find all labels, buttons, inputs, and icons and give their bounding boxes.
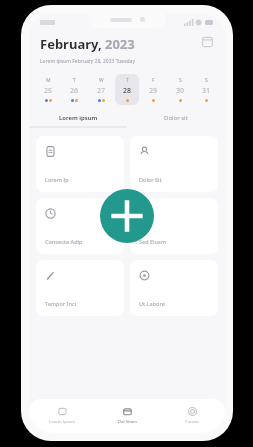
staticText: February, <box>40 35 102 53</box>
staticText: 30 <box>176 86 185 96</box>
button[interactable]: Add <box>100 189 154 243</box>
button[interactable]: M <box>36 74 60 105</box>
button[interactable]: Consecte Adip <box>36 198 124 254</box>
staticText: Dolor sit <box>164 114 188 122</box>
staticText: 2023 <box>105 35 135 53</box>
staticText: W <box>99 77 104 84</box>
button[interactable]: Lorem Ipsum <box>29 399 95 433</box>
button[interactable]: Tempor Inci <box>36 260 124 316</box>
button[interactable]: Calendar <box>201 35 214 48</box>
staticText: Consec <box>185 419 200 425</box>
button[interactable]: Ut Labore <box>130 260 218 316</box>
button[interactable]: S <box>168 74 192 105</box>
staticText: 26 <box>70 86 79 96</box>
button[interactable]: Lorem ipsum <box>29 114 127 122</box>
button[interactable]: Dolor Sit <box>130 136 218 192</box>
staticText: T <box>73 77 76 84</box>
staticText: Ut Labore <box>139 300 165 307</box>
staticText: 25 <box>44 86 53 96</box>
staticText: Dol Sitam <box>118 419 137 425</box>
staticText: Dolor Sit <box>139 176 162 183</box>
button[interactable]: Consec <box>160 399 225 433</box>
button[interactable]: W <box>89 74 113 105</box>
staticText: T <box>126 77 129 84</box>
button[interactable]: Sed Eiusm <box>130 198 218 254</box>
button[interactable]: T <box>115 74 139 105</box>
staticText: Lorem ipsum dolor sit amet cons <box>40 408 118 415</box>
button[interactable]: F <box>141 74 165 105</box>
button[interactable]: Dolor sit <box>127 114 225 122</box>
staticText: F <box>152 77 155 84</box>
staticText: Lorem ipsum February 28, 2023 Tuesday <box>40 58 135 65</box>
button[interactable]: S <box>194 74 218 105</box>
staticText: 29 <box>149 86 158 96</box>
button[interactable]: Lorem Ip <box>36 136 124 192</box>
button[interactable]: T <box>62 74 86 105</box>
staticText: S <box>179 77 182 84</box>
staticText: Consecte Adip <box>45 238 83 245</box>
staticText: Tempor Inci <box>45 300 77 307</box>
staticText: Sed Eiusm <box>139 238 166 245</box>
staticText: 28 <box>123 86 132 96</box>
staticText: M <box>46 77 51 84</box>
staticText: 31 <box>202 86 211 96</box>
staticText: S <box>205 77 208 84</box>
staticText: Lorem ipsum <box>59 114 98 122</box>
staticText: Lorem Ipsum <box>49 419 76 425</box>
button[interactable]: Dol Sitam <box>95 399 160 433</box>
staticText: 27 <box>97 86 106 96</box>
staticText: Lorem Ip <box>45 176 69 183</box>
